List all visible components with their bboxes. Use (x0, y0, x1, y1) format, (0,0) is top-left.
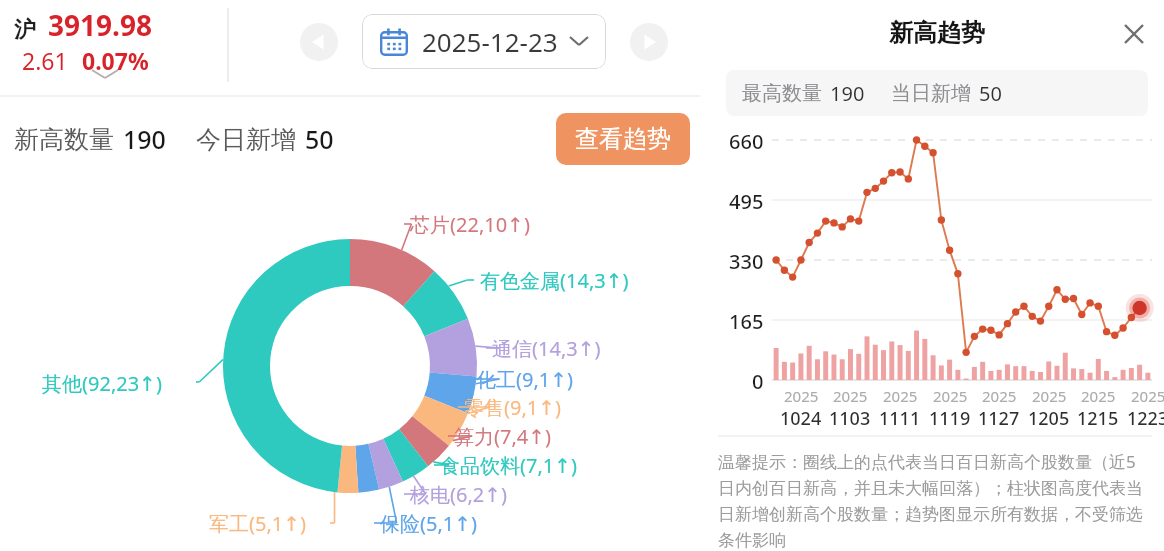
staticText: 2025 (784, 386, 819, 406)
staticText: 2025 (1081, 386, 1116, 406)
staticText: 1024 (780, 406, 822, 431)
staticText: 核电(6,2↑) (410, 481, 507, 508)
staticText: 1127 (978, 406, 1020, 431)
staticText: 330 (729, 248, 764, 275)
staticText: 军工(5,1↑) (209, 510, 306, 537)
staticText: 190 (123, 122, 166, 156)
staticText: 1103 (829, 406, 871, 431)
staticText: 660 (729, 128, 764, 155)
staticText: 2.61 (22, 45, 68, 76)
staticText: 化工(9,1↑) (476, 366, 573, 393)
staticText: 2025 (1032, 386, 1067, 406)
staticText: 2025 (883, 386, 918, 406)
button[interactable]: 2025-12-23 (362, 14, 606, 69)
button[interactable]: Previous day (300, 23, 338, 61)
staticText: 190 (830, 80, 865, 107)
staticText: 新高数量 (14, 124, 114, 155)
button[interactable]: 查看趋势 (556, 113, 690, 165)
staticText: 算力(7,4↑) (454, 423, 551, 450)
staticText: 3919.98 (48, 6, 152, 44)
staticText: 有色金属(14,3↑) (480, 267, 629, 294)
staticText: 1111 (879, 406, 921, 431)
staticText: 零售(9,1↑) (464, 394, 561, 421)
staticText: 50 (305, 122, 334, 156)
staticText: 2025 (933, 386, 968, 406)
staticText: 当日新增 (891, 81, 971, 106)
staticText: 食品饮料(7,1↑) (440, 452, 577, 479)
staticText: 165 (729, 308, 764, 335)
staticText: 1205 (1028, 406, 1070, 431)
staticText: 今日新增 (196, 124, 296, 155)
staticText: 2025 (1131, 386, 1164, 406)
staticText: 其他(92,23↑) (42, 370, 162, 397)
staticText: 1223 (1127, 406, 1164, 431)
staticText: 2025 (833, 386, 868, 406)
staticText: 0 (752, 368, 764, 395)
button[interactable]: Next day (630, 23, 668, 61)
staticText: 沪 (14, 16, 36, 44)
staticText: 查看趋势 (575, 124, 671, 154)
staticText: 1215 (1077, 406, 1119, 431)
staticText: 新高趋势 (889, 18, 985, 48)
staticText: 温馨提示：圈线上的点代表当日百日新高个股数量（近5日内创百日新高，并且未大幅回落… (718, 450, 1152, 551)
staticText: 最高数量 (742, 81, 822, 106)
staticText: 1119 (929, 406, 971, 431)
staticText: 50 (979, 80, 1002, 107)
staticText: 495 (729, 188, 764, 215)
staticText: 2025 (982, 386, 1017, 406)
staticText: 0.07% (82, 45, 149, 76)
staticText: 芯片(22,10↑) (410, 211, 530, 238)
staticText: 2025-12-23 (422, 24, 558, 59)
staticText: 通信(14,3↑) (492, 335, 601, 362)
button[interactable]: Close (1116, 16, 1152, 52)
staticText: 保险(5,1↑) (380, 510, 477, 537)
